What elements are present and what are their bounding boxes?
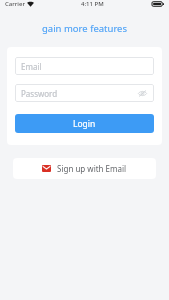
button[interactable]: Email bbox=[15, 57, 154, 75]
button[interactable]: Password bbox=[15, 84, 154, 102]
button[interactable]: Show password bbox=[137, 88, 148, 99]
staticText: Login bbox=[73, 118, 96, 130]
staticText: Carrier bbox=[5, 0, 25, 8]
staticText: Password bbox=[21, 88, 58, 99]
staticText: 4:11 PM bbox=[81, 0, 104, 8]
staticText: Email bbox=[21, 61, 42, 72]
staticText: Sign up with Email bbox=[57, 163, 127, 174]
staticText: gain more features bbox=[0, 22, 169, 35]
button[interactable]: Sign up with Email bbox=[13, 158, 156, 179]
button[interactable]: Login bbox=[15, 114, 154, 133]
